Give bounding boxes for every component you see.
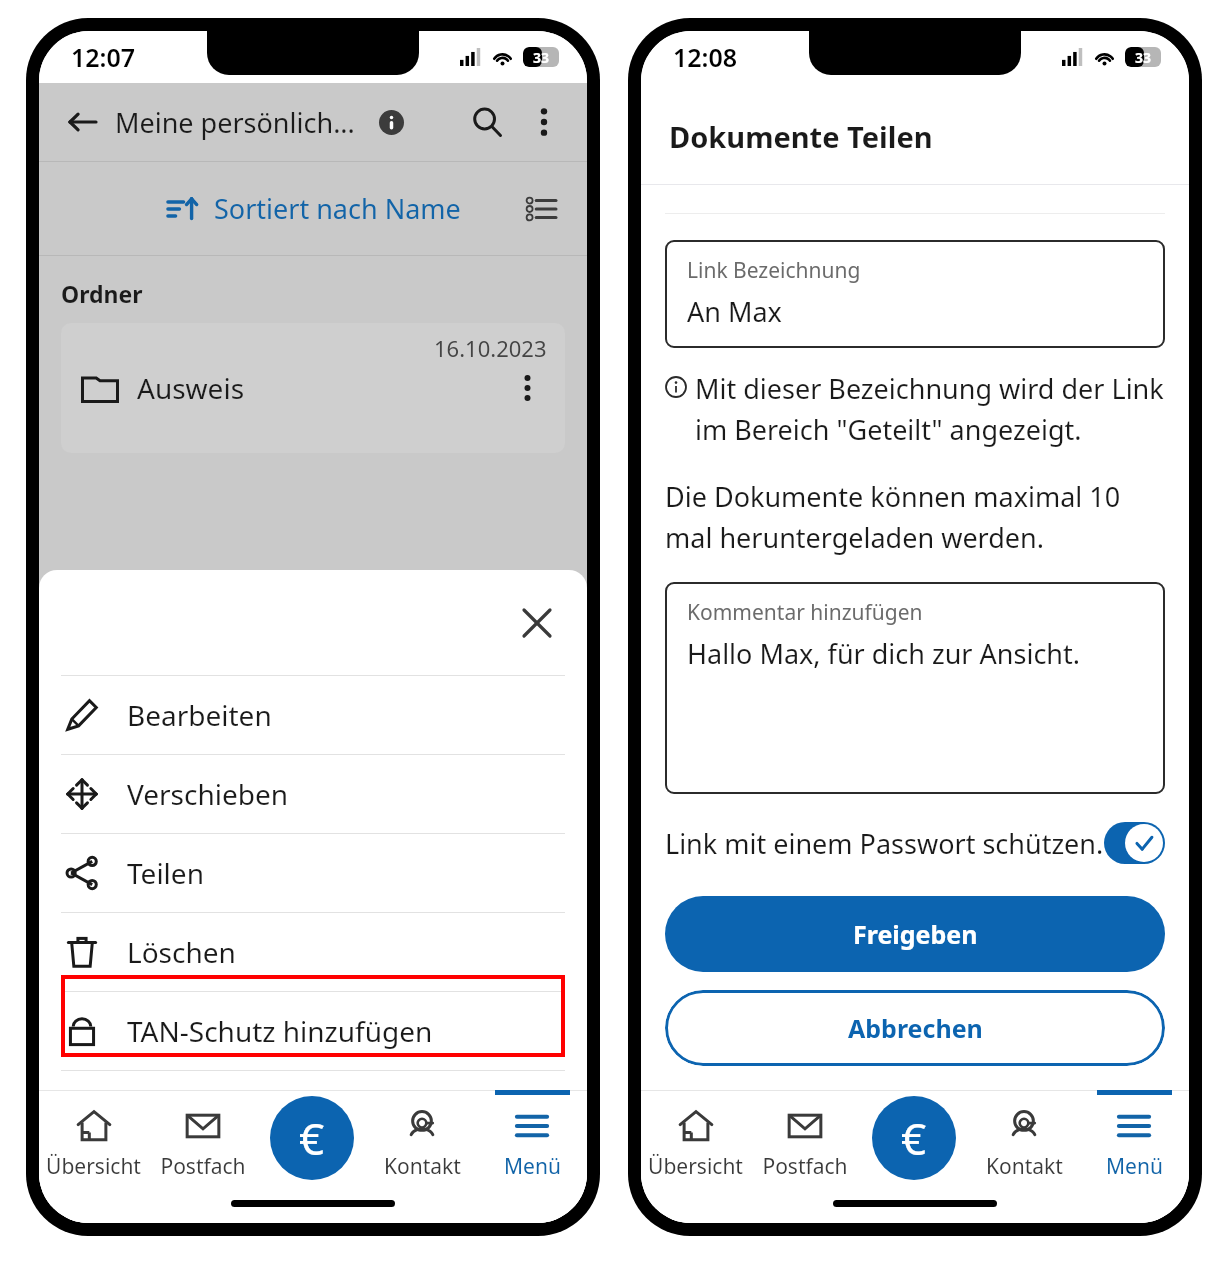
- staticText: Abbrechen: [848, 1011, 983, 1045]
- button[interactable]: Banking: [270, 1096, 354, 1180]
- staticText: Übersicht: [648, 1152, 743, 1181]
- button[interactable]: Ansicht: [517, 185, 565, 233]
- staticText: Kontakt: [986, 1152, 1063, 1181]
- button[interactable]: Übersicht: [641, 1090, 750, 1181]
- button[interactable]: Link mit einem Passwort schützen.: [641, 822, 1189, 864]
- button[interactable]: Abbrechen: [665, 990, 1165, 1066]
- staticText: TAN-Schutz hinzufügen: [127, 1012, 433, 1050]
- button[interactable]: TAN-Schutz hinzufügen: [39, 992, 587, 1070]
- button[interactable]: Löschen: [39, 913, 587, 991]
- staticText: Menü: [1106, 1152, 1163, 1181]
- staticText: Postfach: [762, 1152, 848, 1181]
- staticText: €: [901, 1108, 927, 1168]
- staticText: €: [299, 1108, 325, 1168]
- staticText: Dokumente Teilen: [669, 117, 933, 156]
- staticText: Hallo Max, für dich zur Ansicht.: [687, 635, 1081, 672]
- staticText: Ordner: [61, 278, 143, 309]
- button[interactable]: Menü: [1079, 1090, 1189, 1208]
- button[interactable]: Übersicht: [39, 1090, 148, 1181]
- button[interactable]: Optionen: [507, 368, 547, 408]
- button[interactable]: Info: [371, 102, 411, 142]
- button[interactable]: Teilen: [39, 834, 587, 912]
- staticText: Link teilen: [127, 1091, 262, 1129]
- staticText: An Max: [687, 293, 782, 330]
- button[interactable]: Kontakt: [367, 1090, 477, 1181]
- button[interactable]: Suche: [463, 98, 511, 146]
- button[interactable]: Link Bezeichnung: [665, 240, 1165, 348]
- staticText: Kontakt: [384, 1152, 461, 1181]
- staticText: Sortiert nach Name: [214, 190, 461, 227]
- staticText: Link mit einem Passwort schützen.: [665, 825, 1104, 862]
- button[interactable]: Freigeben: [665, 896, 1165, 972]
- staticText: Link Bezeichnung: [687, 256, 861, 285]
- button[interactable]: Verschieben: [39, 755, 587, 833]
- button[interactable]: Kontakt: [969, 1090, 1079, 1181]
- staticText: Meine persönlich...: [115, 104, 355, 141]
- staticText: Kommentar hinzufügen: [687, 598, 923, 627]
- button[interactable]: Sortiert nach Name: [39, 162, 587, 255]
- button[interactable]: Schließen: [511, 597, 563, 649]
- button[interactable]: Mehr: [521, 99, 567, 145]
- button[interactable]: Menü: [477, 1090, 587, 1208]
- staticText: Postfach: [160, 1152, 246, 1181]
- button[interactable]: Banking: [872, 1096, 956, 1180]
- staticText: Teilen: [127, 854, 204, 892]
- staticText: Mit dieser Bezeichnung wird der Link im …: [695, 370, 1165, 448]
- staticText: 33: [533, 48, 550, 67]
- button[interactable]: Zurück: [59, 99, 105, 145]
- staticText: Bearbeiten: [127, 696, 272, 734]
- staticText: Übersicht: [46, 1152, 141, 1181]
- staticText: Freigeben: [853, 917, 978, 951]
- button[interactable]: Postfach: [148, 1090, 257, 1181]
- staticText: 12:08: [673, 40, 738, 74]
- button[interactable]: Kommentar hinzufügen: [665, 582, 1165, 794]
- button[interactable]: Bearbeiten: [39, 676, 587, 754]
- staticText: 12:07: [71, 40, 136, 74]
- staticText: 16.10.2023: [434, 333, 547, 363]
- staticText: Löschen: [127, 933, 236, 971]
- button[interactable]: Postfach: [750, 1090, 859, 1181]
- staticText: Die Dokumente können maximal 10 mal heru…: [665, 478, 1165, 556]
- button[interactable]: Link teilen: [39, 1071, 587, 1149]
- button[interactable]: 16.10.2023: [61, 323, 565, 453]
- staticText: Ausweis: [137, 369, 245, 407]
- staticText: 33: [1135, 48, 1152, 67]
- staticText: Menü: [504, 1152, 561, 1181]
- staticText: Verschieben: [127, 775, 289, 813]
